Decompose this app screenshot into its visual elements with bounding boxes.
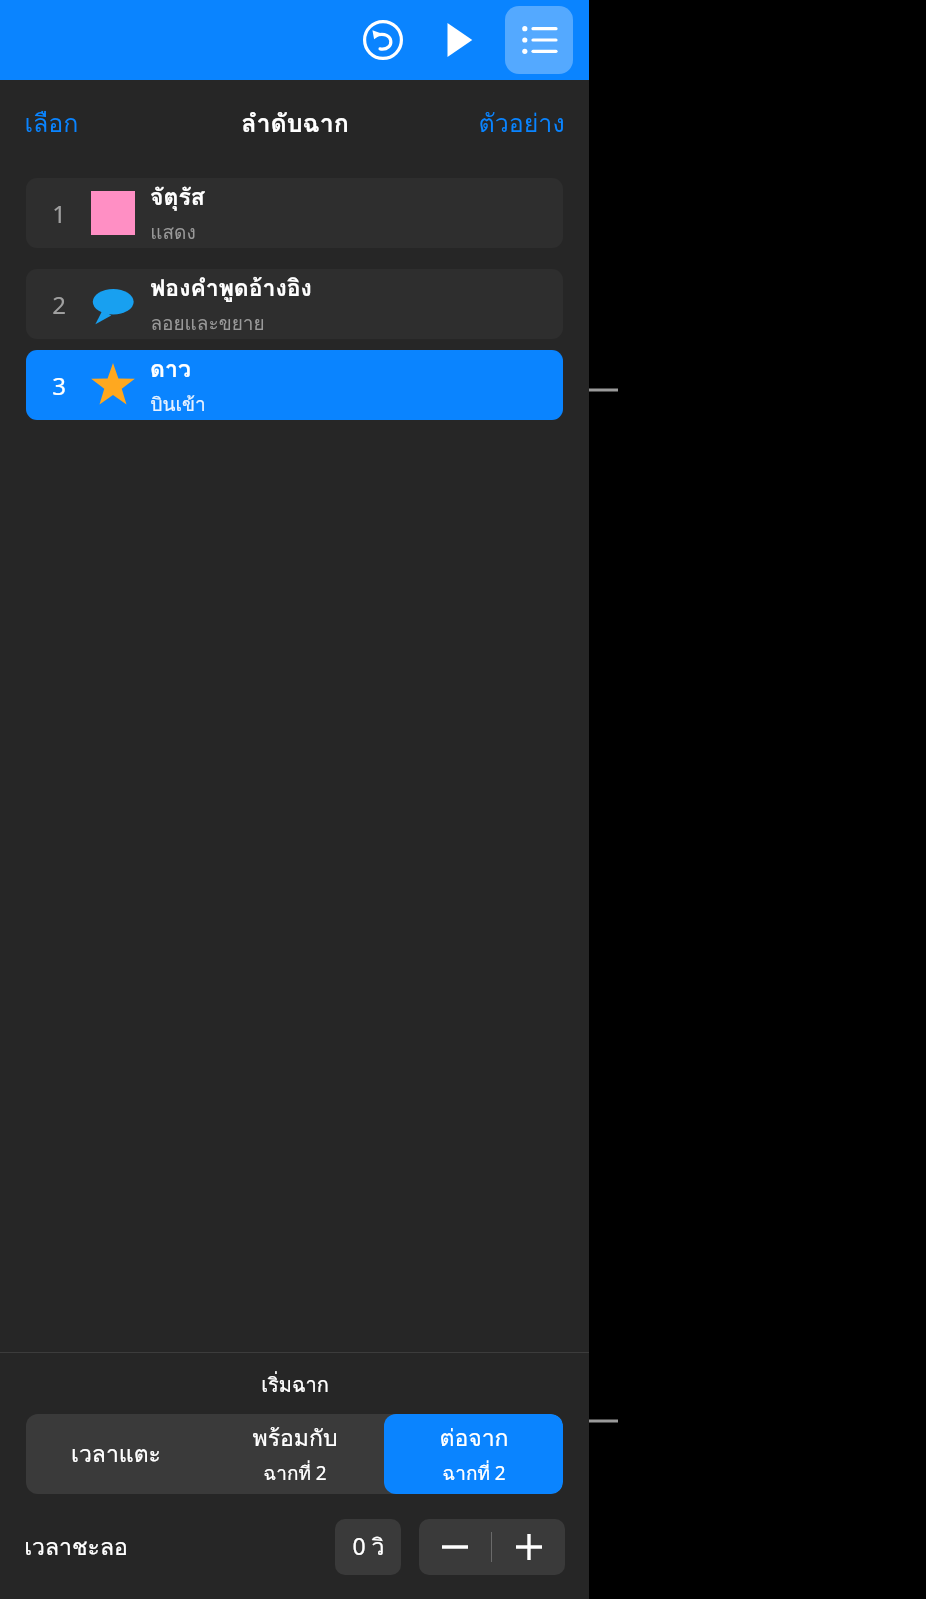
button[interactable]: ตัวอย่าง <box>464 95 579 151</box>
staticText: บินเข้า <box>150 389 206 419</box>
button[interactable]: Undo <box>357 14 409 66</box>
button[interactable]: ต่อจาก <box>384 1414 563 1494</box>
button[interactable]: Play <box>431 14 483 66</box>
button[interactable]: เวลาแตะ <box>26 1414 205 1494</box>
button[interactable]: Decrease delay <box>419 1519 491 1575</box>
button[interactable]: พร้อมกับ <box>205 1414 384 1494</box>
staticText: ตัวอย่าง <box>478 103 565 143</box>
staticText: เลือก <box>24 103 79 143</box>
button[interactable]: เลือก <box>10 95 93 151</box>
button[interactable]: Increase delay <box>492 1519 565 1575</box>
staticText: ลอยและขยาย <box>150 308 265 338</box>
staticText: ฉากที่ 2 <box>263 1458 327 1488</box>
staticText: ฟองคำพูดอ้างอิง <box>150 270 312 307</box>
staticText: เริ่มฉาก <box>261 1369 329 1401</box>
button[interactable]: Scene list <box>505 6 573 74</box>
staticText: ฉากที่ 2 <box>442 1458 506 1488</box>
staticText: 2 <box>52 288 66 321</box>
staticText: 1 <box>52 197 66 230</box>
button[interactable]: 1 <box>26 178 563 248</box>
button[interactable]: 3 <box>26 350 563 420</box>
staticText: จัตุรัส <box>150 179 205 216</box>
button[interactable]: 0 วิ <box>335 1519 401 1575</box>
button[interactable]: 2 <box>26 269 563 339</box>
staticText: พร้อมกับ <box>252 1420 338 1457</box>
staticText: เวลาชะลอ <box>24 1529 128 1566</box>
staticText: ต่อจาก <box>439 1420 509 1457</box>
staticText: แสดง <box>150 217 196 247</box>
staticText: 3 <box>52 369 66 402</box>
staticText: ดาว <box>150 351 191 388</box>
staticText: เวลาแตะ <box>71 1436 161 1473</box>
staticText: ลำดับฉาก <box>241 103 349 143</box>
staticText: 0 วิ <box>352 1529 385 1566</box>
